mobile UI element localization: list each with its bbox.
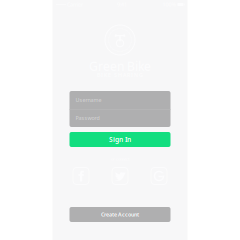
staticText: Username <box>75 96 101 104</box>
staticText: Create Account <box>101 211 139 218</box>
button[interactable]: Password <box>69 109 170 127</box>
staticText: Password <box>75 114 99 122</box>
staticText: Sign In <box>109 135 131 144</box>
button[interactable]: Create Account <box>69 207 170 222</box>
button[interactable]: Username <box>69 91 170 109</box>
button[interactable]: Sign In <box>69 132 170 147</box>
